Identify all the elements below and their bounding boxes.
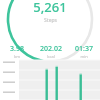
staticText: 01:37 — [75, 44, 93, 54]
button[interactable]: Step progress ring — [0, 0, 100, 52]
button[interactable]: 01:37 — [67, 44, 100, 59]
button[interactable]: 3.98 — [0, 44, 34, 59]
staticText: 5,261 — [33, 0, 67, 16]
staticText: kcal — [47, 54, 55, 59]
button[interactable]: 202.02 — [34, 44, 67, 59]
button[interactable]: 5,261 — [0, 0, 100, 24]
staticText: 202.02 — [40, 44, 62, 54]
staticText: Steps — [44, 17, 57, 24]
staticText: km — [14, 54, 20, 59]
staticText: 3.98 — [10, 44, 24, 54]
staticText: min — [80, 54, 88, 59]
button[interactable]: Activity bar chart — [0, 58, 100, 100]
